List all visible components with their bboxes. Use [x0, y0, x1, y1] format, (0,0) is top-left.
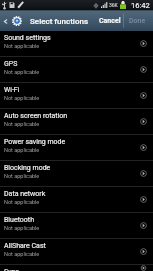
staticText: Not applicable — [4, 173, 40, 179]
staticText: Done — [129, 17, 146, 25]
other: Open details — [140, 92, 147, 99]
button[interactable]: Wi-Fi — [0, 83, 153, 108]
button[interactable]: GPS — [0, 57, 153, 82]
staticText: Sound settings — [4, 34, 51, 42]
staticText: Wi-Fi — [4, 86, 20, 94]
other: Open details — [140, 66, 147, 73]
button[interactable]: Sync — [0, 265, 153, 271]
button[interactable]: Auto screen rotation — [0, 109, 153, 134]
button[interactable]: Done — [124, 10, 153, 31]
staticText: Not applicable — [4, 225, 40, 231]
staticText: Not applicable — [4, 69, 40, 75]
staticText: Select functions — [30, 17, 88, 26]
staticText: Not applicable — [4, 121, 40, 127]
staticText: Cancel — [99, 17, 121, 25]
staticText: Sync — [4, 268, 19, 271]
staticText: Power saving mode — [4, 138, 66, 146]
button[interactable]: Bluetooth — [0, 213, 153, 238]
other: Open details — [140, 248, 147, 255]
staticText: Not applicable — [4, 95, 40, 101]
staticText: GPS — [4, 60, 18, 68]
button[interactable]: Power saving mode — [0, 135, 153, 160]
other: Open details — [140, 170, 147, 177]
other: Open details — [140, 40, 147, 47]
staticText: AllShare Cast — [4, 242, 46, 250]
button[interactable]: Blocking mode — [0, 161, 153, 186]
button[interactable]: Data network — [0, 187, 153, 212]
button[interactable]: Sound settings — [0, 31, 153, 56]
staticText: Not applicable — [4, 199, 40, 205]
other: Open details — [140, 265, 147, 271]
staticText: Data network — [4, 190, 46, 198]
other: Navigate up — [3, 19, 8, 24]
staticText: Auto screen rotation — [4, 112, 68, 120]
staticText: Bluetooth — [4, 216, 34, 224]
other: Open details — [140, 196, 147, 203]
button[interactable]: Navigate up — [0, 16, 90, 26]
other: Open details — [140, 222, 147, 229]
button[interactable]: AllShare Cast — [0, 239, 153, 264]
staticText: 16:42 — [131, 1, 150, 10]
other: Open details — [140, 118, 147, 125]
staticText: Not applicable — [4, 43, 40, 49]
button[interactable]: Cancel — [96, 10, 123, 31]
staticText: Not applicable — [4, 147, 40, 153]
staticText: Not applicable — [4, 251, 40, 257]
other: Open details — [140, 144, 147, 151]
staticText: Blocking mode — [4, 164, 51, 172]
staticText: 36K — [109, 2, 118, 8]
